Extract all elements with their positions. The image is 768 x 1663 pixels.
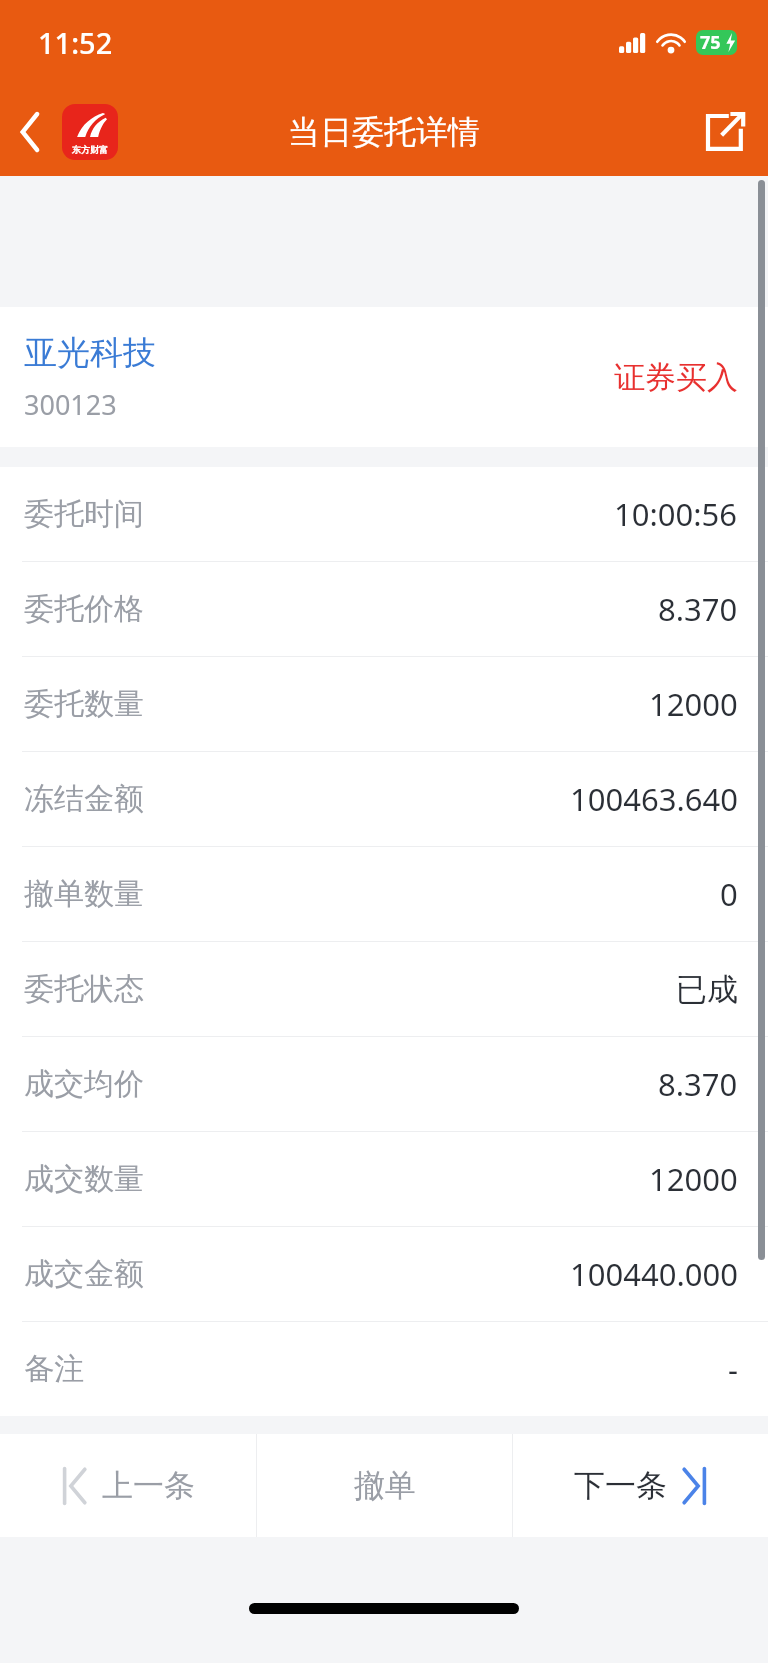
- staticText: 300123: [24, 386, 117, 423]
- staticText: 委托状态: [24, 970, 144, 1008]
- button[interactable]: Back: [0, 88, 62, 176]
- button[interactable]: 上一条: [0, 1434, 256, 1537]
- staticText: 0: [720, 873, 738, 915]
- staticText: 11:52: [38, 23, 113, 62]
- button[interactable]: 亚光科技: [0, 307, 768, 447]
- button[interactable]: 备注: [0, 1322, 768, 1416]
- button[interactable]: 委托时间: [0, 467, 768, 561]
- staticText: 东方财富: [72, 144, 108, 155]
- staticText: 成交均价: [24, 1065, 144, 1103]
- button[interactable]: 委托状态: [0, 942, 768, 1036]
- button[interactable]: 撤单数量: [0, 847, 768, 941]
- staticText: 撤单: [354, 1466, 416, 1505]
- staticText: 委托数量: [24, 685, 144, 723]
- staticText: 已成: [676, 970, 738, 1009]
- button[interactable]: 成交数量: [0, 1132, 768, 1226]
- staticText: 证券买入: [614, 358, 738, 397]
- staticText: 12000: [649, 683, 738, 725]
- staticText: 冻结金额: [24, 780, 144, 818]
- staticText: 上一条: [102, 1466, 195, 1505]
- button[interactable]: 下一条: [513, 1434, 768, 1537]
- button[interactable]: 委托价格: [0, 562, 768, 656]
- staticText: 委托时间: [24, 495, 144, 533]
- staticText: 75: [700, 30, 721, 55]
- staticText: 100440.000: [570, 1253, 738, 1295]
- staticText: 成交金额: [24, 1255, 144, 1293]
- staticText: 亚光科技: [24, 332, 156, 374]
- staticText: 100463.640: [570, 778, 738, 820]
- staticText: 委托价格: [24, 590, 144, 628]
- button[interactable]: 冻结金额: [0, 752, 768, 846]
- button[interactable]: 撤单: [257, 1434, 512, 1537]
- staticText: 8.370: [658, 588, 738, 630]
- button[interactable]: 成交金额: [0, 1227, 768, 1321]
- staticText: 12000: [649, 1158, 738, 1200]
- button[interactable]: Share: [680, 88, 768, 176]
- button[interactable]: East Money logo: [62, 104, 118, 160]
- staticText: 撤单数量: [24, 875, 144, 913]
- staticText: 成交数量: [24, 1160, 144, 1198]
- staticText: -: [728, 1348, 738, 1390]
- staticText: 当日委托详情: [288, 112, 480, 152]
- staticText: 8.370: [658, 1063, 738, 1105]
- button[interactable]: 委托数量: [0, 657, 768, 751]
- staticText: 备注: [24, 1350, 84, 1388]
- button[interactable]: 成交均价: [0, 1037, 768, 1131]
- staticText: 下一条: [574, 1466, 667, 1505]
- staticText: 10:00:56: [614, 493, 738, 535]
